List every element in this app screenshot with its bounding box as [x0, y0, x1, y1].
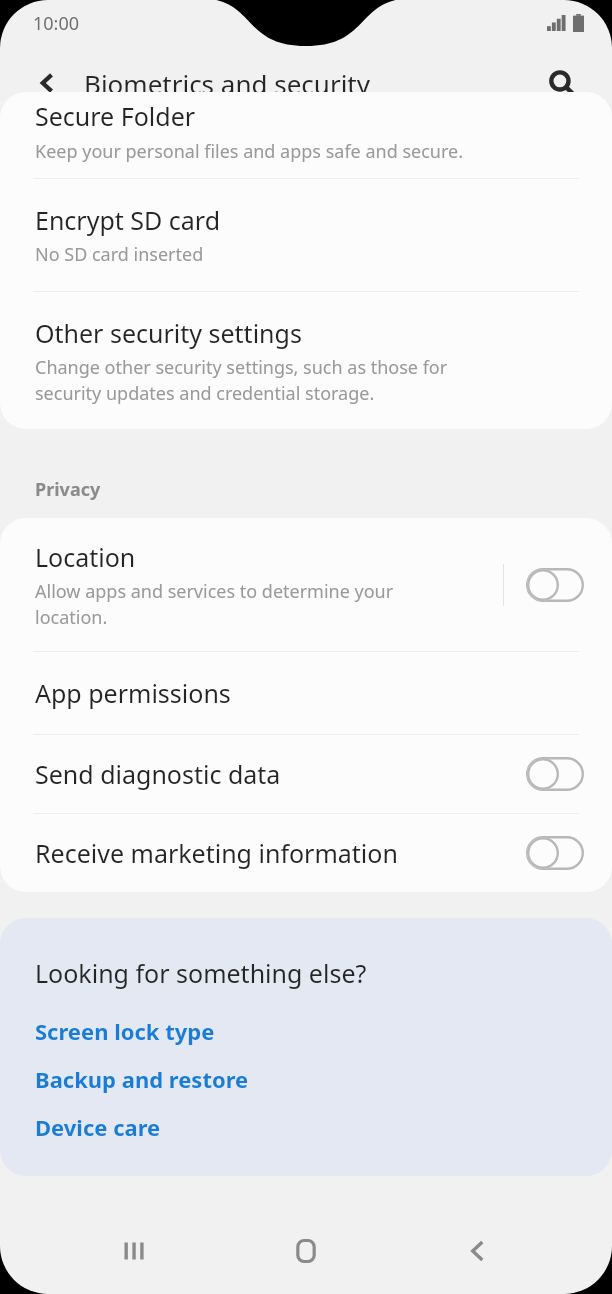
button[interactable]: Location [0, 518, 612, 651]
staticText: Biometrics and security [84, 66, 371, 101]
button[interactable]: Send diagnostic data [0, 735, 612, 813]
staticText: Location [35, 540, 136, 574]
button[interactable]: Receive marketing information [0, 814, 612, 892]
staticText: Looking for something else? [35, 956, 367, 990]
button[interactable]: Backup and restore [35, 1064, 249, 1094]
button[interactable]: Encrypt SD card [0, 179, 612, 291]
staticText: Screen lock type [35, 1016, 215, 1046]
staticText: Other security settings [35, 316, 302, 350]
button[interactable]: Send diagnostic data toggle [526, 757, 584, 791]
staticText: 10:00 [33, 11, 80, 36]
button[interactable]: Search [536, 57, 588, 109]
staticText: Change other security settings, such as … [35, 355, 448, 405]
staticText: Backup and restore [35, 1064, 249, 1094]
button[interactable]: Home [269, 1214, 343, 1288]
staticText: Privacy [35, 477, 101, 502]
staticText: Encrypt SD card [35, 203, 221, 237]
staticText: No SD card inserted [35, 242, 204, 267]
button[interactable]: Device care [35, 1112, 161, 1142]
staticText: Secure Folder [35, 99, 196, 133]
button[interactable]: Recents [98, 1214, 172, 1288]
staticText: Allow apps and services to determine you… [35, 579, 394, 629]
staticText: Receive marketing information [35, 836, 398, 870]
button[interactable]: Back [22, 57, 74, 109]
staticText: App permissions [35, 676, 231, 710]
button[interactable]: Receive marketing information toggle [526, 836, 584, 870]
button[interactable]: App permissions [0, 652, 612, 734]
button[interactable]: Screen lock type [35, 1016, 215, 1046]
button[interactable]: Location toggle [526, 568, 584, 602]
staticText: Device care [35, 1112, 161, 1142]
staticText: Send diagnostic data [35, 757, 281, 791]
button[interactable]: Back [441, 1214, 515, 1288]
button[interactable]: Other security settings [0, 292, 612, 429]
staticText: Keep your personal files and apps safe a… [35, 139, 463, 164]
button[interactable]: Secure Folder [0, 92, 612, 178]
